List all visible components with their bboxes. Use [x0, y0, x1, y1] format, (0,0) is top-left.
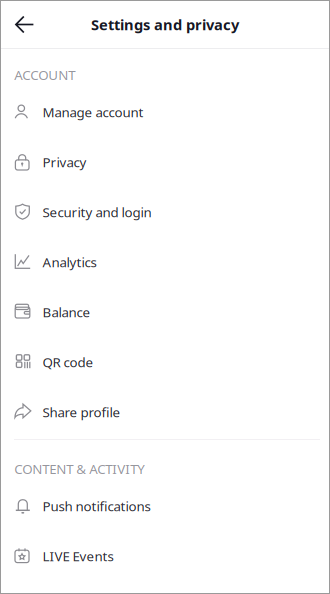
staticText: Settings and privacy [91, 15, 239, 34]
button[interactable]: Security and login [1, 187, 329, 237]
staticText: Share profile [42, 403, 120, 421]
staticText: CONTENT & ACTIVITY [14, 460, 145, 478]
staticText: Balance [42, 303, 90, 321]
button[interactable]: Balance [1, 287, 329, 337]
button[interactable]: Manage account [1, 87, 329, 137]
button[interactable]: Share profile [1, 387, 329, 437]
staticText: QR code [42, 353, 93, 371]
staticText: Security and login [42, 203, 151, 221]
button[interactable]: Analytics [1, 237, 329, 287]
staticText: Privacy [42, 153, 86, 171]
staticText: Analytics [42, 253, 96, 271]
button[interactable]: Push notifications [1, 481, 329, 531]
staticText: Manage account [42, 103, 143, 121]
staticText: ACCOUNT [14, 66, 75, 84]
staticText: Push notifications [42, 497, 150, 515]
staticText: LIVE Events [42, 547, 113, 565]
button[interactable]: Back [1, 1, 61, 48]
button[interactable]: Privacy [1, 137, 329, 187]
button[interactable]: LIVE Events [1, 531, 329, 581]
button[interactable]: QR code [1, 337, 329, 387]
